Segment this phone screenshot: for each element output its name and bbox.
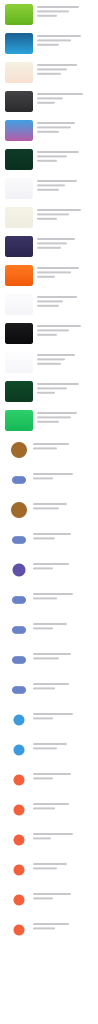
- button[interactable]: [0, 465, 98, 495]
- button[interactable]: [0, 495, 98, 525]
- button[interactable]: [0, 174, 98, 203]
- button[interactable]: [0, 765, 98, 795]
- button[interactable]: [0, 705, 98, 735]
- button[interactable]: [0, 825, 98, 855]
- button[interactable]: [0, 885, 98, 915]
- button[interactable]: [0, 735, 98, 765]
- button[interactable]: [0, 290, 98, 319]
- button[interactable]: [0, 555, 98, 585]
- button[interactable]: [0, 795, 98, 825]
- button[interactable]: [0, 145, 98, 174]
- button[interactable]: [0, 645, 98, 675]
- button[interactable]: [0, 435, 98, 465]
- button[interactable]: [0, 675, 98, 705]
- button[interactable]: [0, 615, 98, 645]
- button[interactable]: [0, 406, 98, 435]
- button[interactable]: [0, 348, 98, 377]
- button[interactable]: [0, 29, 98, 58]
- button[interactable]: [0, 87, 98, 116]
- button[interactable]: [0, 116, 98, 145]
- button[interactable]: [0, 0, 98, 29]
- button[interactable]: [0, 58, 98, 87]
- button[interactable]: [0, 915, 98, 945]
- button[interactable]: [0, 203, 98, 232]
- button[interactable]: [0, 585, 98, 615]
- button[interactable]: [0, 232, 98, 261]
- button[interactable]: [0, 855, 98, 885]
- button[interactable]: [0, 525, 98, 555]
- button[interactable]: [0, 319, 98, 348]
- button[interactable]: [0, 261, 98, 290]
- button[interactable]: [0, 377, 98, 406]
